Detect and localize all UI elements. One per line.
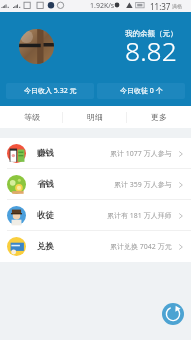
button[interactable]: 收徒 [0,200,191,231]
staticText: 11:37 [150,1,171,12]
staticText: 省钱 [37,179,54,190]
button[interactable]: 等级 [0,106,63,128]
staticText: 累计有 181 万人拜师 [107,211,172,221]
button[interactable]: 今日收徒 0 个 [97,83,185,99]
staticText: 更多 [151,112,167,122]
staticText: 等级 [24,112,40,122]
staticText: 我的余额（元） [125,29,178,38]
button[interactable]: Refresh [162,303,184,325]
staticText: 满格 [172,3,182,9]
staticText: 8.82 [125,33,177,69]
button[interactable]: 今日收入 5.32 元 [6,83,94,99]
button[interactable]: 赚钱 [0,138,191,169]
staticText: 赚钱 [37,148,54,159]
button[interactable]: 明细 [63,106,127,128]
staticText: 累计兑换 7042 万元 [110,242,172,252]
staticText: 今日收徒 0 个 [120,86,163,96]
staticText: 明细 [87,112,103,122]
staticText: 今日收入 5.32 元 [24,86,77,96]
button[interactable]: 兑换 [0,231,191,262]
button[interactable]: Profile photo [19,29,54,64]
staticText: 1.92K/s [90,1,115,11]
staticText: 兑换 [37,241,54,252]
staticText: 累计 359 万人参与 [114,180,172,190]
staticText: 收徒 [37,210,54,221]
button[interactable]: 省钱 [0,169,191,200]
button[interactable]: 更多 [127,106,191,128]
staticText: 累计 1077 万人参与 [110,149,172,159]
